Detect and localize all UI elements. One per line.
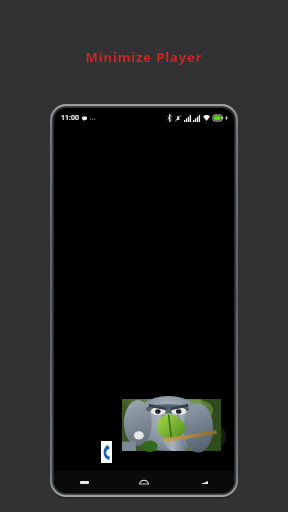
button[interactable]: Home bbox=[114, 471, 174, 493]
staticText: Minimize Player bbox=[0, 48, 288, 66]
button[interactable]: Picture in picture video bbox=[122, 399, 221, 451]
staticText: 11:00 bbox=[61, 113, 79, 123]
button[interactable]: Back bbox=[174, 471, 234, 493]
button[interactable]: Recents bbox=[54, 471, 114, 493]
button[interactable]: Minimized app bbox=[101, 441, 112, 463]
